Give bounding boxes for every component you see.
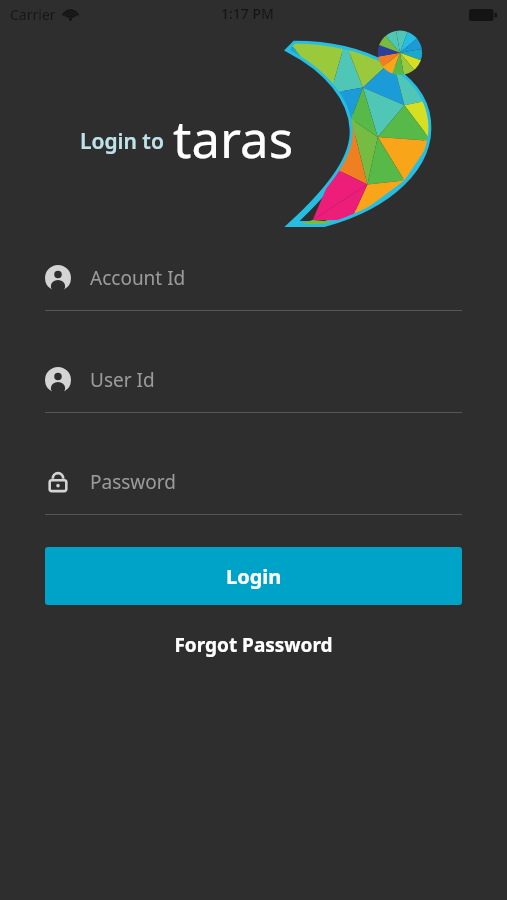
button[interactable]: Account (45, 256, 462, 300)
staticText: Carrier (10, 5, 56, 24)
staticText: Login to (80, 127, 164, 156)
staticText: Login (226, 563, 282, 590)
button[interactable]: Password (45, 460, 462, 504)
staticText: Forgot Password (174, 632, 333, 658)
staticText: User Id (90, 367, 155, 393)
staticText: Account Id (90, 265, 186, 291)
button[interactable]: Forgot Password (45, 627, 462, 663)
other: Account (45, 367, 71, 393)
other: Account (45, 265, 71, 291)
staticText: Password (90, 469, 176, 495)
staticText: taras (173, 103, 294, 172)
other: Password (45, 469, 71, 495)
button[interactable]: Login (45, 547, 462, 605)
button[interactable]: Account (45, 358, 462, 402)
staticText: 1:17 PM (221, 4, 274, 23)
